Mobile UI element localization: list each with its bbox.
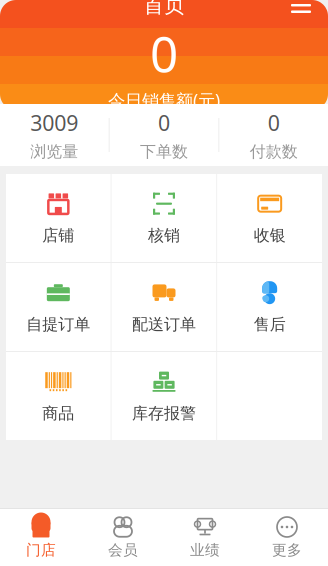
button[interactable]: 收银 bbox=[217, 174, 322, 262]
button[interactable]: 会员 bbox=[82, 509, 164, 566]
staticText: 付款数 bbox=[250, 142, 298, 161]
staticText: 商品 bbox=[42, 404, 74, 423]
staticText: 0 bbox=[158, 108, 170, 137]
staticText: 收银 bbox=[254, 226, 286, 245]
staticText: 店铺 bbox=[42, 226, 74, 245]
button[interactable]: 更多 bbox=[246, 509, 328, 566]
staticText: 会员 bbox=[108, 541, 138, 559]
staticText: 0 bbox=[268, 108, 280, 137]
staticText: 配送订单 bbox=[132, 315, 196, 334]
button[interactable]: 商品 bbox=[6, 352, 111, 440]
staticText: 下单数 bbox=[140, 142, 188, 161]
staticText: 首页 bbox=[143, 0, 185, 18]
staticText: 0 bbox=[150, 20, 178, 86]
staticText: 核销 bbox=[148, 226, 180, 245]
staticText: 浏览量 bbox=[30, 142, 78, 161]
staticText: 3009 bbox=[30, 108, 78, 137]
button[interactable]: 库存报警 bbox=[112, 352, 216, 440]
staticText: 业绩 bbox=[190, 541, 220, 559]
button[interactable]: 门店 bbox=[0, 509, 82, 566]
button[interactable]: 业绩 bbox=[164, 509, 246, 566]
staticText: 今日销售额(元) bbox=[108, 89, 220, 112]
button[interactable]: 自提订单 bbox=[6, 263, 111, 351]
staticText: 库存报警 bbox=[132, 404, 196, 423]
staticText: 售后 bbox=[254, 315, 286, 334]
staticText: 门店 bbox=[26, 541, 56, 559]
button[interactable]: 售后 bbox=[217, 263, 322, 351]
button[interactable]: 菜单 bbox=[284, 0, 318, 19]
staticText: 更多 bbox=[272, 541, 302, 559]
staticText: 自提订单 bbox=[26, 315, 90, 334]
button[interactable]: 配送订单 bbox=[112, 263, 216, 351]
button[interactable]: 店铺 bbox=[6, 174, 111, 262]
button[interactable]: 核销 bbox=[112, 174, 216, 262]
